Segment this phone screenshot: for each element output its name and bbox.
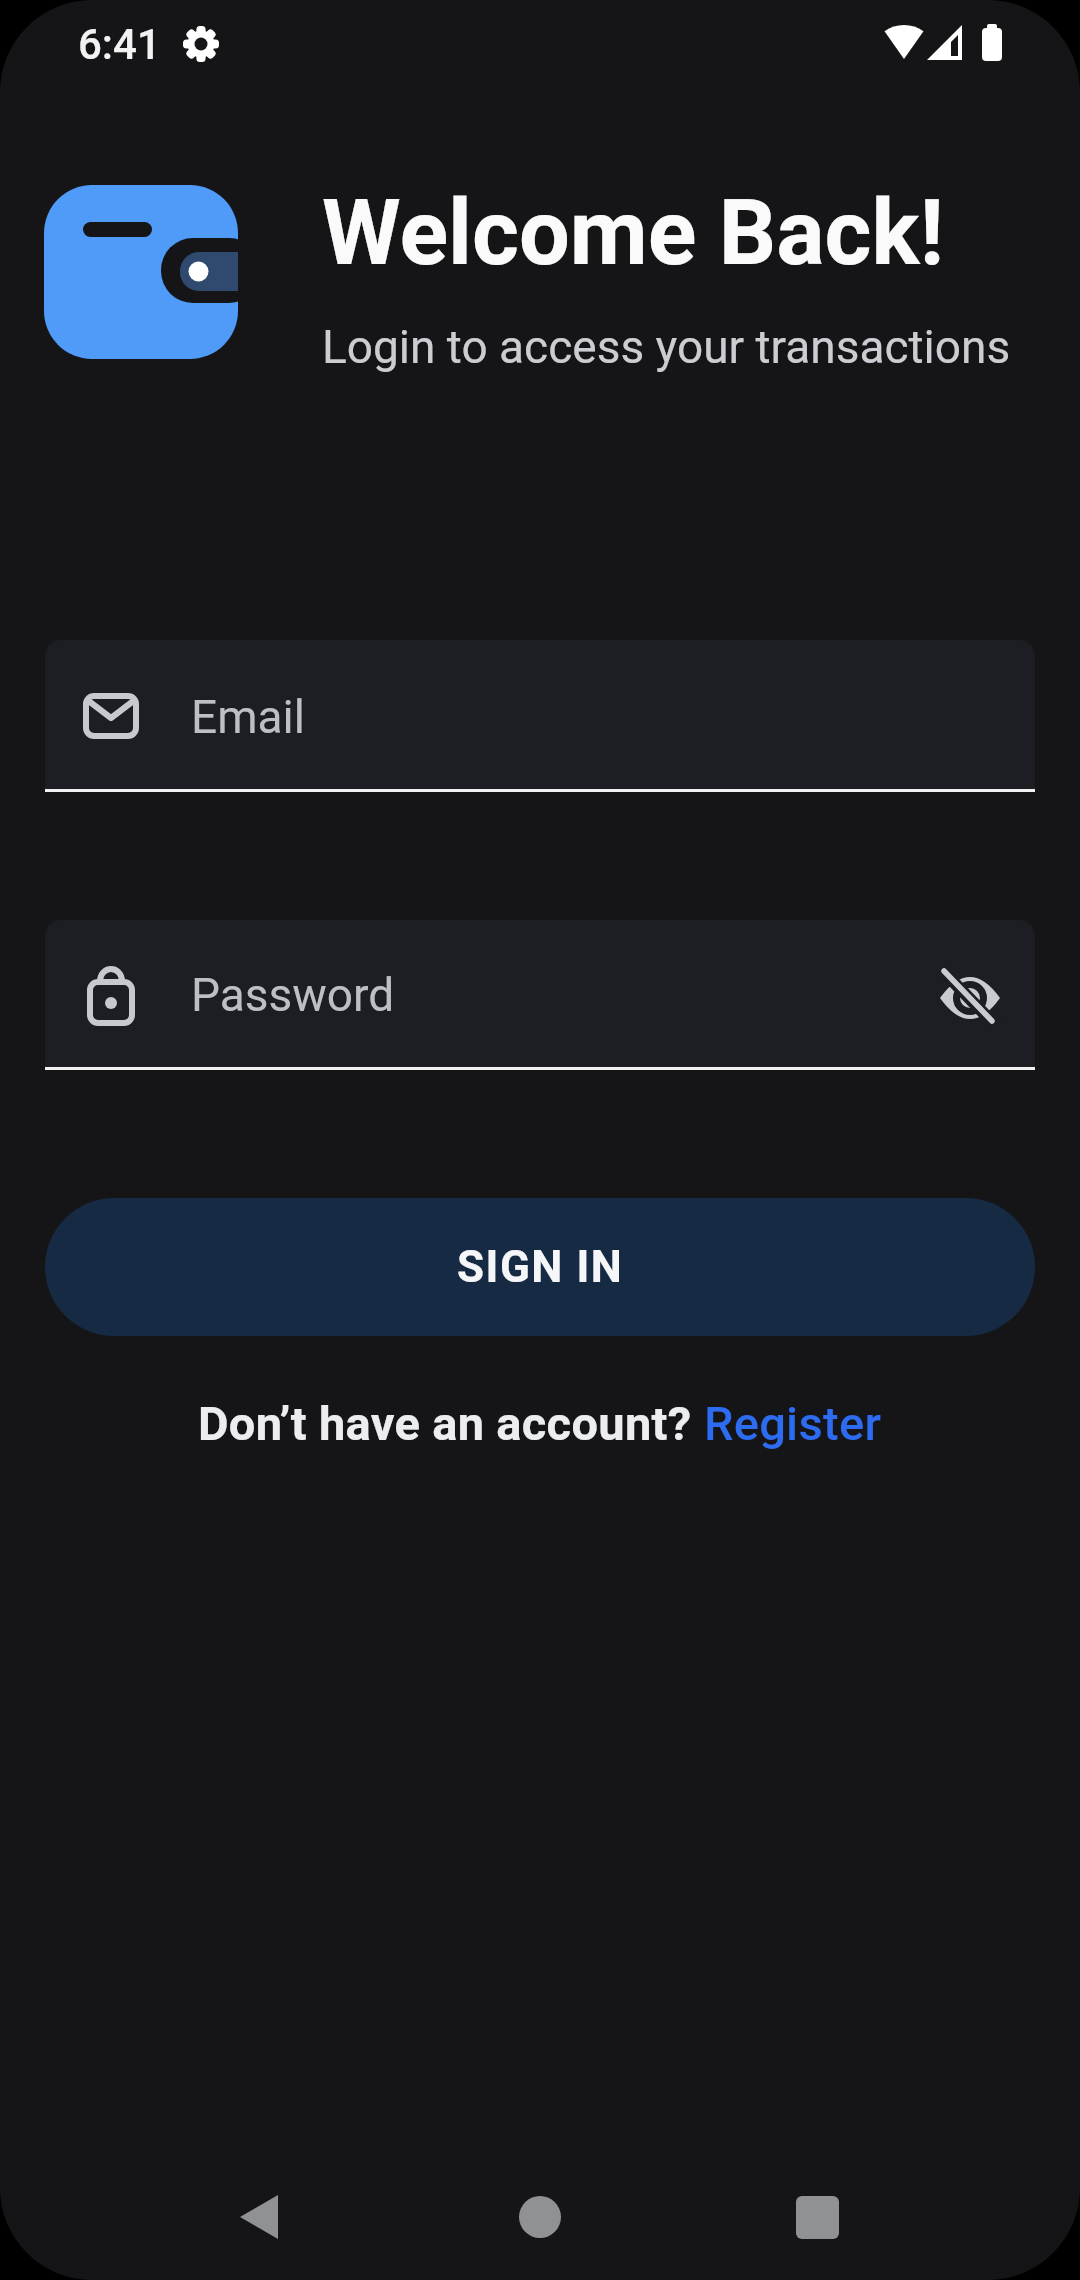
staticText: Password bbox=[191, 968, 395, 1022]
staticText: 6:41 bbox=[78, 20, 161, 69]
button[interactable]: Password bbox=[45, 920, 1035, 1070]
button[interactable]: Email bbox=[45, 640, 1035, 792]
button[interactable] bbox=[936, 970, 1000, 1026]
staticText: Login to access your transactions bbox=[322, 320, 1011, 374]
button[interactable]: Register bbox=[704, 1396, 882, 1451]
staticText: Email bbox=[191, 690, 305, 744]
button[interactable]: SIGN IN bbox=[45, 1198, 1035, 1336]
button[interactable] bbox=[216, 2193, 302, 2241]
button[interactable] bbox=[497, 2193, 583, 2241]
staticText: Don’t have an account? bbox=[198, 1396, 704, 1451]
staticText: Welcome Back! bbox=[322, 181, 944, 286]
staticText: SIGN IN bbox=[457, 1241, 624, 1293]
button[interactable] bbox=[774, 2193, 860, 2241]
